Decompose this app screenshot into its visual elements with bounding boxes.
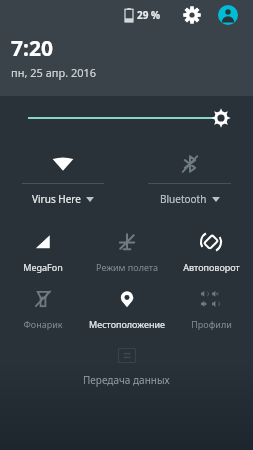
button[interactable]: Bluetooth <box>126 146 253 206</box>
button[interactable]: Location <box>85 287 169 330</box>
button[interactable]: Data transfer <box>0 348 253 387</box>
staticText: Virus Here <box>32 192 81 206</box>
staticText: Фонарик <box>23 318 63 330</box>
staticText: Передача данных <box>83 373 170 387</box>
staticText: 7:20 <box>11 34 53 63</box>
staticText: Профили <box>191 318 232 330</box>
staticText: MegaFon <box>23 261 63 273</box>
button[interactable]: Mobile network <box>0 230 85 273</box>
button[interactable]: Settings <box>179 2 205 28</box>
button[interactable]: Brightness <box>0 96 253 140</box>
staticText: Местоположение <box>89 318 165 330</box>
button[interactable]: Airplane mode <box>85 230 169 273</box>
button[interactable]: Wi-Fi <box>0 146 126 206</box>
button[interactable]: Auto rotate <box>169 230 253 273</box>
button[interactable]: Profiles <box>169 287 253 330</box>
staticText: пн, 25 апр. 2016 <box>11 65 97 80</box>
staticText: 29 % <box>137 8 161 22</box>
staticText: Автоповорот <box>183 261 240 273</box>
button[interactable]: User profile <box>215 2 241 28</box>
button[interactable]: Flashlight <box>0 287 85 330</box>
staticText: Режим полета <box>96 261 158 273</box>
staticText: Bluetooth <box>160 192 207 206</box>
